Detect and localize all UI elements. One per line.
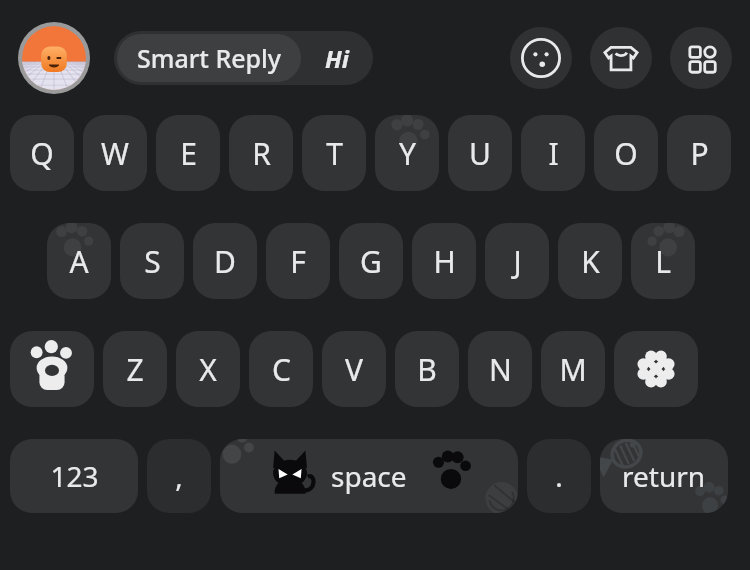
button[interactable]: Shift: [10, 331, 94, 407]
button[interactable]: Hi: [301, 31, 373, 85]
staticText: V: [345, 349, 363, 390]
staticText: L: [655, 241, 671, 282]
staticText: T: [326, 133, 343, 174]
button[interactable]: V: [322, 331, 386, 407]
staticText: Hi: [325, 42, 349, 75]
button[interactable]: Q: [10, 115, 74, 191]
button[interactable]: ,: [147, 439, 211, 513]
button[interactable]: P: [667, 115, 731, 191]
button[interactable]: N: [468, 331, 532, 407]
button[interactable]: Y: [375, 115, 439, 191]
staticText: Q: [30, 133, 54, 174]
button[interactable]: O: [594, 115, 658, 191]
button[interactable]: T: [302, 115, 366, 191]
staticText: A: [69, 241, 89, 282]
button[interactable]: W: [83, 115, 147, 191]
staticText: R: [252, 133, 271, 174]
staticText: S: [144, 241, 161, 282]
button[interactable]: Emoji: [510, 27, 572, 89]
button[interactable]: S: [120, 223, 184, 299]
button[interactable]: R: [229, 115, 293, 191]
button[interactable]: L: [631, 223, 695, 299]
staticText: P: [690, 133, 709, 174]
button[interactable]: F: [266, 223, 330, 299]
staticText: space: [331, 457, 407, 495]
staticText: ,: [175, 457, 183, 495]
button[interactable]: E: [156, 115, 220, 191]
staticText: H: [433, 241, 456, 282]
staticText: Y: [399, 133, 416, 174]
staticText: O: [614, 133, 638, 174]
button[interactable]: Stickers: [590, 27, 652, 89]
button[interactable]: J: [485, 223, 549, 299]
staticText: W: [101, 133, 129, 174]
button[interactable]: C: [249, 331, 313, 407]
staticText: G: [360, 241, 382, 282]
staticText: K: [581, 241, 600, 282]
staticText: X: [199, 349, 217, 390]
button[interactable]: 123: [10, 439, 138, 513]
staticText: U: [469, 133, 491, 174]
button[interactable]: U: [448, 115, 512, 191]
button[interactable]: Profile avatar: [18, 22, 90, 94]
staticText: I: [548, 133, 559, 174]
button[interactable]: M: [541, 331, 605, 407]
staticText: E: [180, 133, 197, 174]
staticText: Z: [126, 349, 144, 390]
staticText: N: [489, 349, 512, 390]
staticText: J: [513, 241, 522, 282]
button[interactable]: space: [220, 439, 518, 513]
staticText: D: [214, 241, 236, 282]
button[interactable]: return: [600, 439, 728, 513]
button[interactable]: B: [395, 331, 459, 407]
button[interactable]: A: [47, 223, 111, 299]
staticText: 123: [50, 457, 99, 495]
staticText: return: [622, 457, 706, 495]
button[interactable]: Smart Reply: [114, 31, 373, 85]
staticText: .: [555, 457, 563, 495]
button[interactable]: D: [193, 223, 257, 299]
button[interactable]: X: [176, 331, 240, 407]
button[interactable]: Smart Reply: [117, 34, 301, 82]
button[interactable]: Apps: [670, 27, 732, 89]
staticText: F: [290, 241, 306, 282]
button[interactable]: I: [521, 115, 585, 191]
staticText: C: [272, 349, 291, 390]
button[interactable]: G: [339, 223, 403, 299]
button[interactable]: Z: [103, 331, 167, 407]
button[interactable]: Backspace: [614, 331, 698, 407]
button[interactable]: H: [412, 223, 476, 299]
staticText: B: [417, 349, 437, 390]
button[interactable]: .: [527, 439, 591, 513]
staticText: M: [559, 349, 587, 390]
staticText: Smart Reply: [137, 41, 281, 75]
button[interactable]: K: [558, 223, 622, 299]
